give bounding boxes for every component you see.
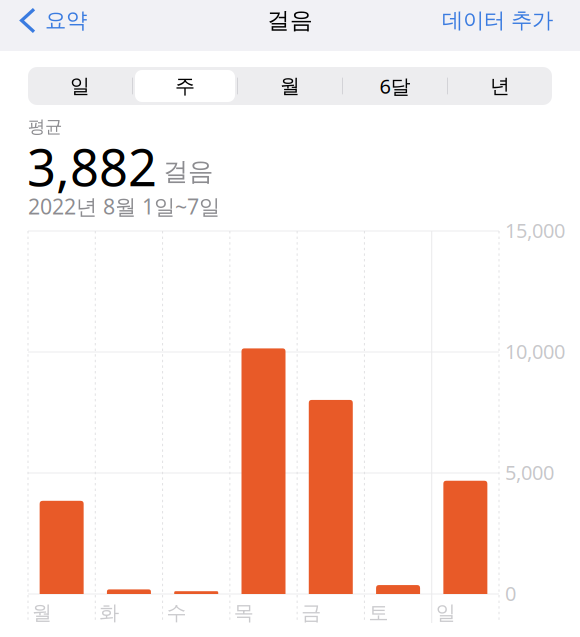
staticText: 평균	[28, 116, 62, 137]
button[interactable]: 목	[230, 231, 297, 625]
button[interactable]: 수	[163, 231, 230, 625]
staticText: 목	[234, 600, 254, 625]
staticText: 6달	[379, 73, 410, 99]
staticText: 요약	[45, 7, 87, 34]
staticText: 금	[301, 600, 321, 625]
staticText: 일	[436, 600, 456, 625]
staticText: 데이터 추가	[442, 7, 553, 34]
button[interactable]: 화	[95, 231, 163, 625]
button[interactable]: 월	[238, 70, 342, 102]
button[interactable]: 주	[133, 70, 237, 102]
staticText: 일	[70, 74, 90, 98]
staticText: 년	[490, 74, 510, 98]
staticText: 수	[167, 600, 187, 625]
staticText: 주	[175, 74, 195, 98]
button[interactable]: 월	[28, 231, 95, 625]
staticText: 토	[368, 600, 388, 625]
staticText: 5,000	[505, 459, 554, 486]
button[interactable]: 일	[432, 231, 499, 625]
button[interactable]: 토	[364, 231, 432, 625]
button[interactable]: 금	[297, 231, 364, 625]
staticText: 2022년 8월 1일~7일	[28, 192, 220, 220]
staticText: 15,000	[505, 217, 565, 244]
staticText: 0	[505, 580, 516, 607]
button[interactable]: 년	[448, 70, 552, 102]
button[interactable]: 요약	[0, 0, 95, 41]
button[interactable]: 일	[28, 70, 132, 102]
staticText: 월	[32, 600, 52, 625]
staticText: 걸음	[163, 156, 213, 187]
staticText: 걸음	[267, 7, 313, 34]
staticText: 10,000	[505, 338, 565, 365]
button[interactable]: 6달	[343, 70, 447, 102]
staticText: 3,882	[27, 133, 157, 200]
button[interactable]: 데이터 추가	[434, 0, 580, 41]
staticText: 화	[99, 600, 119, 625]
staticText: 월	[280, 74, 300, 98]
